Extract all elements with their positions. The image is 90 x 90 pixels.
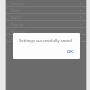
- button[interactable]: Display: [6, 21, 86, 28]
- other: Open Security: [78, 1, 83, 6]
- staticText: Relay: [11, 8, 21, 13]
- button[interactable]: About: [6, 35, 86, 42]
- button[interactable]: OK: [65, 48, 75, 56]
- button[interactable]: Network: [6, 28, 86, 35]
- staticText: Display: [11, 22, 24, 27]
- staticText: Security: [11, 1, 25, 6]
- staticText: Network: [11, 29, 26, 34]
- other: Open Alarm: [78, 15, 83, 20]
- other: Open Relay: [78, 8, 83, 13]
- staticText: About: [11, 36, 22, 41]
- staticText: OK: [67, 49, 73, 55]
- other: Open Network: [78, 29, 83, 34]
- button[interactable]: Relay: [6, 7, 86, 14]
- other: Open Display: [78, 22, 83, 27]
- button[interactable]: Security: [6, 0, 86, 7]
- staticText: Alarm: [11, 15, 22, 20]
- staticText: Settings successfully saved: [19, 38, 72, 44]
- button[interactable]: Alarm: [6, 14, 86, 21]
- other: Open About: [78, 36, 83, 41]
